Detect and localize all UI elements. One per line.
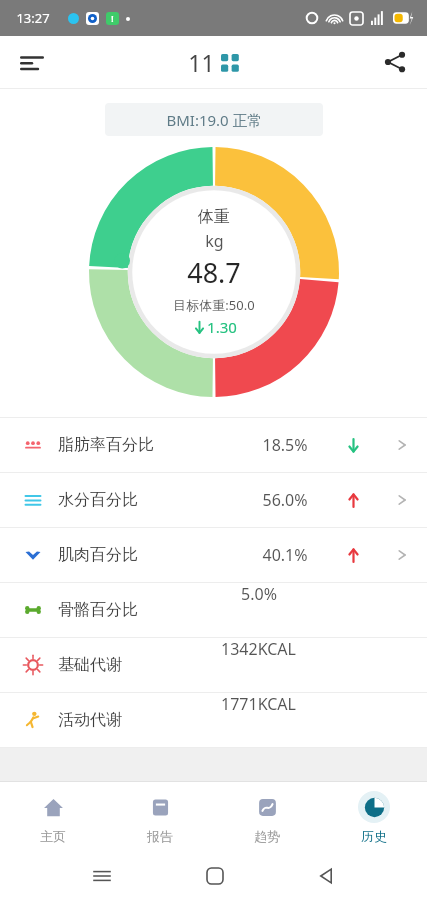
staticText: 肌肉百分比 <box>58 545 138 565</box>
staticText: kg <box>205 230 224 252</box>
staticText: 历史 <box>361 828 387 844</box>
staticText: ! <box>111 13 114 24</box>
button[interactable]: 肌肉百分比 <box>0 528 427 582</box>
button[interactable]: 活动代谢 <box>0 693 427 747</box>
staticText: 13:27 <box>16 9 50 27</box>
staticText: 脂肪率百分比 <box>58 435 154 455</box>
staticText: 40.1% <box>262 544 308 566</box>
staticText: 报告 <box>147 828 173 844</box>
staticText: 1771KCAL <box>221 693 296 715</box>
staticText: 48.7 <box>187 254 241 291</box>
button[interactable]: BMI:19.0 正常 <box>105 103 323 136</box>
staticText: 5.0% <box>241 583 277 605</box>
button[interactable]: 历史 <box>320 791 427 844</box>
staticText: 活动代谢 <box>58 710 122 730</box>
staticText: 56.0% <box>262 489 308 511</box>
staticText: 骨骼百分比 <box>58 600 138 620</box>
button[interactable]: 骨骼百分比 <box>0 583 427 637</box>
staticText: BMI:19.0 正常 <box>166 110 263 130</box>
staticText: 1.30 <box>207 317 237 337</box>
staticText: 18.5% <box>262 434 308 456</box>
button[interactable]: 脂肪率百分比 <box>0 418 427 472</box>
button[interactable]: 基础代谢 <box>0 638 427 692</box>
button[interactable]: 主页 <box>0 791 106 844</box>
button[interactable]: 水分百分比 <box>0 473 427 527</box>
staticText: 11 <box>188 47 215 78</box>
staticText: 基础代谢 <box>58 655 122 675</box>
staticText: 目标体重:50.0 <box>173 296 255 314</box>
staticText: 1342KCAL <box>221 638 296 660</box>
staticText: 水分百分比 <box>58 490 138 510</box>
button[interactable]: Share <box>373 40 417 84</box>
button[interactable]: 报告 <box>106 791 213 844</box>
staticText: 主页 <box>40 828 66 844</box>
button[interactable]: 趋势 <box>213 791 320 844</box>
button[interactable]: Menu <box>10 40 54 84</box>
staticText: 体重 <box>198 207 230 227</box>
staticText: 趋势 <box>254 828 280 844</box>
